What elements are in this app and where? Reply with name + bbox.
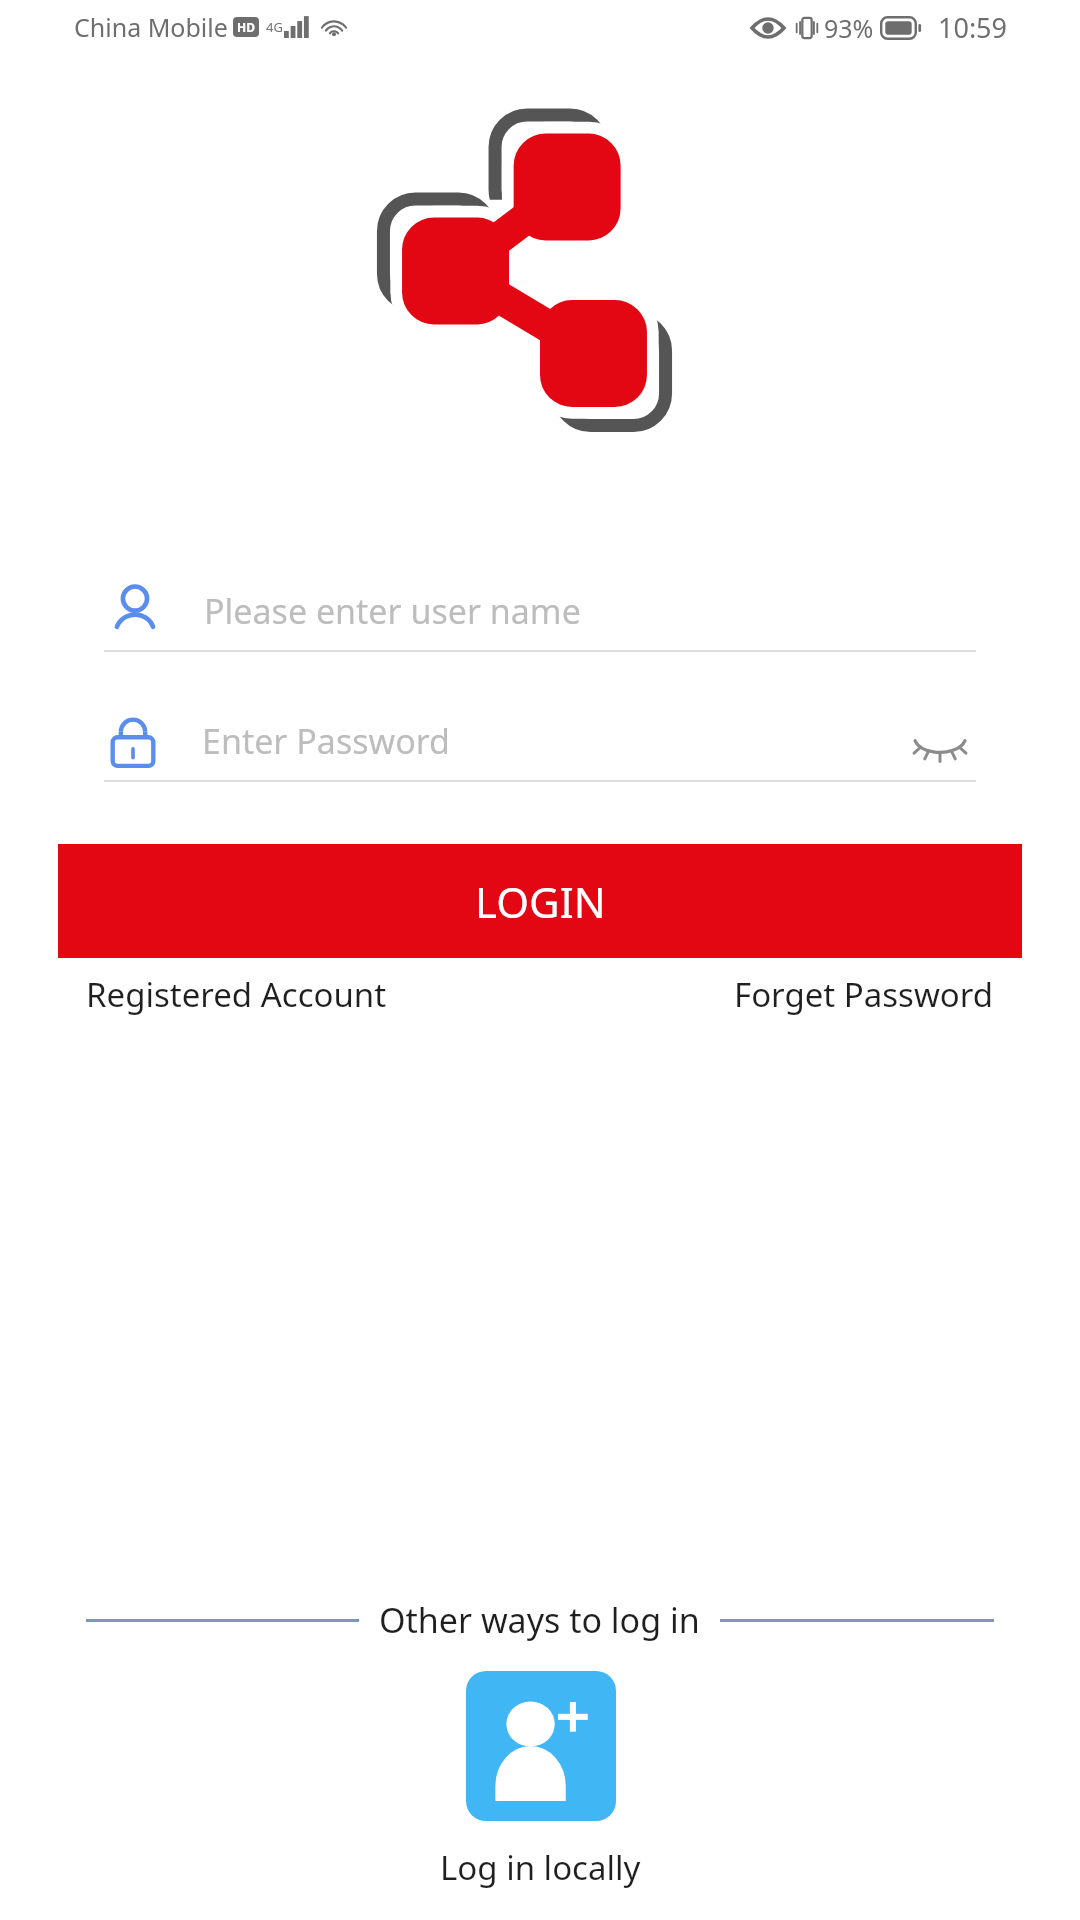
staticText: China Mobile: [74, 10, 228, 44]
staticText: Registered Account: [86, 972, 387, 1017]
staticText: 10:59: [938, 9, 1008, 46]
button[interactable]: Forget Password: [734, 972, 994, 1017]
staticText: 93%: [824, 11, 874, 45]
staticText: LOGIN: [475, 873, 606, 930]
button[interactable]: LOGIN: [58, 844, 1022, 958]
staticText: 4G: [266, 18, 283, 36]
staticText: Log in locally: [440, 1845, 641, 1890]
staticText: Other ways to log in: [379, 1597, 700, 1643]
button[interactable]: Registered Account: [86, 972, 387, 1017]
staticText: Enter Password: [202, 718, 451, 764]
staticText: HD: [237, 19, 255, 35]
button[interactable]: Show password: [904, 711, 976, 771]
button[interactable]: Please enter user name: [104, 572, 976, 652]
button[interactable]: Log in locally: [440, 1671, 641, 1890]
button[interactable]: Enter Password: [104, 702, 976, 782]
staticText: Please enter user name: [204, 588, 581, 634]
staticText: Forget Password: [734, 972, 994, 1017]
